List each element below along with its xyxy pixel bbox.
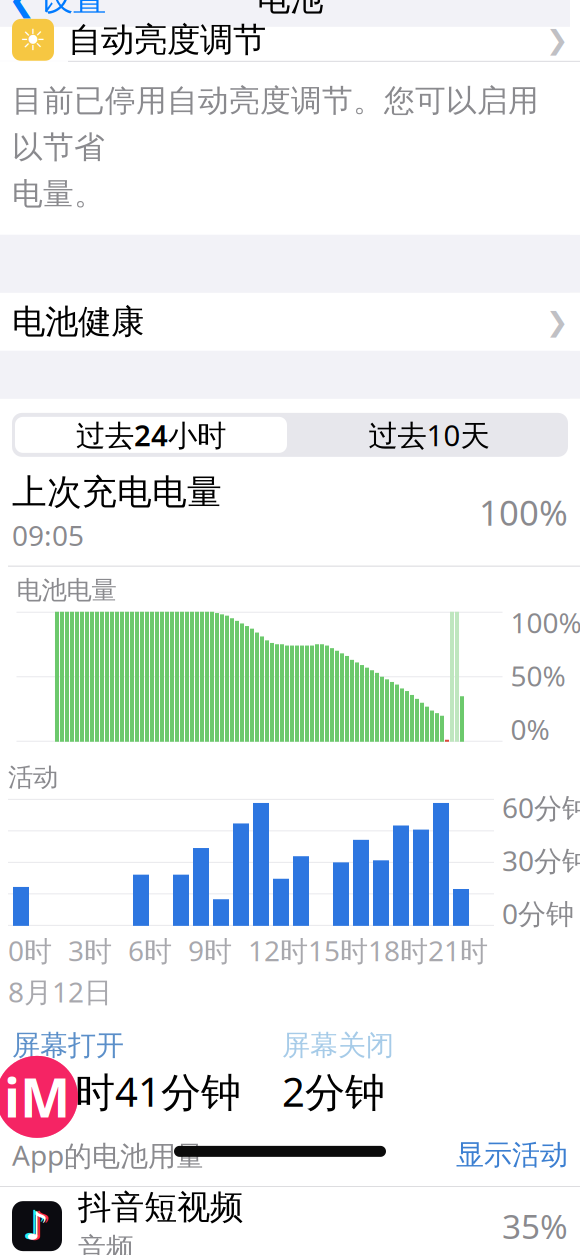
staticText: ☀ [20, 23, 46, 56]
staticText: 3时 [68, 932, 112, 969]
staticText: ❮ [8, 0, 36, 18]
staticText: 过去10天 [368, 415, 489, 454]
staticText: 35% [502, 1204, 568, 1248]
staticText: 过去24小时 [76, 415, 226, 454]
staticText: 30分钟 [502, 842, 580, 879]
staticText: 100% [479, 489, 568, 535]
staticText: 0分钟 [502, 895, 574, 932]
staticText: App的电池用量 [12, 1136, 204, 1174]
staticText: 15时 [308, 932, 368, 969]
staticText: 活动 [8, 762, 58, 793]
staticText: 上次充电电量 [12, 471, 222, 513]
staticText: 12时 [248, 932, 308, 969]
staticText: 屏幕打开 [12, 1028, 124, 1063]
staticText: 18时 [368, 932, 428, 969]
button[interactable]: 过去10天 [290, 416, 568, 454]
staticText: ♪ [21, 1202, 47, 1248]
staticText: 目前已停用自动亮度调节。您可以启用以节省 电量。 [12, 82, 539, 213]
staticText: 屏幕关闭 [282, 1028, 394, 1063]
staticText: 50% [510, 657, 565, 694]
staticText: 100% [510, 604, 580, 641]
staticText: iM [4, 1061, 70, 1132]
staticText: ❯ [546, 25, 568, 55]
staticText: 6时 [128, 932, 172, 969]
staticText: 0时 [8, 932, 52, 969]
staticText: ♪ [26, 1203, 52, 1249]
button[interactable]: 电池健康 [0, 293, 580, 351]
staticText: ♪ [24, 1204, 49, 1248]
staticText: 2分钟 [282, 1065, 385, 1118]
staticText: 音频 [78, 1231, 134, 1255]
button[interactable]: ☀ [0, 27, 580, 61]
staticText: 电池电量 [16, 575, 116, 606]
button[interactable]: ❮ [0, 0, 124, 27]
staticText: 9小时41分钟 [12, 1065, 241, 1118]
staticText: 09:05 [12, 516, 84, 554]
staticText: 8月12日 [8, 973, 112, 1010]
button[interactable]: 显示活动 [446, 1134, 568, 1176]
staticText: 抖音短视频 [78, 1187, 243, 1228]
staticText: ❯ [546, 307, 568, 337]
staticText: 电池 [257, 0, 323, 19]
staticText: 60分钟 [502, 789, 580, 826]
staticText: 9时 [188, 932, 232, 969]
button[interactable]: ♪ [0, 1187, 580, 1255]
staticText: 设置 [40, 0, 106, 19]
button[interactable]: 过去24小时 [12, 414, 290, 456]
staticText: 0% [510, 711, 549, 748]
staticText: 电池健康 [12, 301, 144, 342]
staticText: 自动亮度调节 [68, 19, 266, 60]
staticText: 21时 [428, 932, 488, 969]
staticText: 显示活动 [456, 1138, 568, 1172]
